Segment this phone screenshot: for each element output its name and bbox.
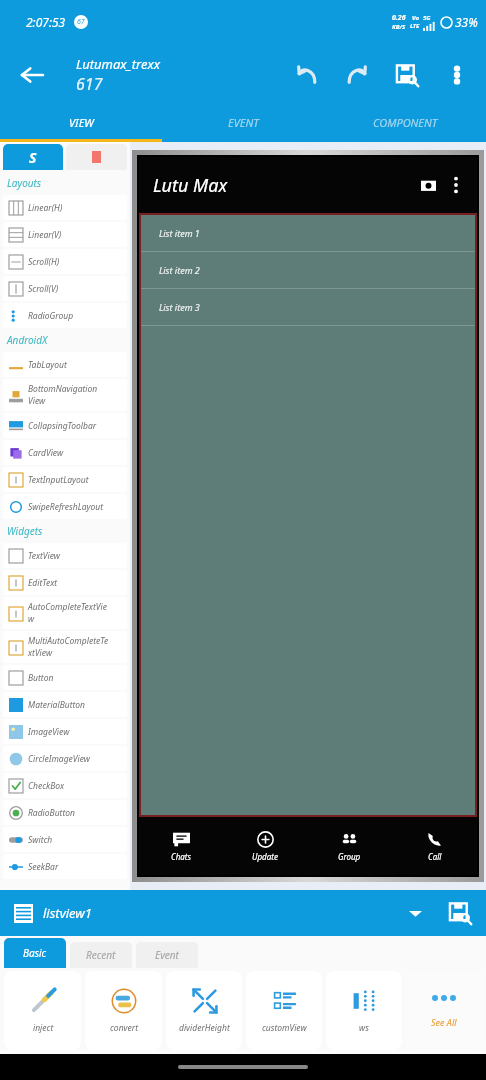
button[interactable]: Save (382, 49, 432, 101)
staticText: CircleImageView (28, 753, 90, 765)
button[interactable]: MultiAutoCompleteTe xtView (3, 631, 127, 663)
button[interactable]: ImageView (3, 719, 127, 744)
button[interactable]: Call (392, 817, 477, 875)
button[interactable]: ws (326, 971, 402, 1050)
button[interactable]: AutoCompleteTextVie w (3, 597, 127, 629)
button[interactable]: Camera (413, 170, 443, 200)
staticText: List item 2 (159, 264, 200, 276)
staticText: CheckBox (28, 780, 65, 792)
button[interactable]: Button (3, 665, 127, 690)
button[interactable]: BottomNavigation View (3, 379, 127, 411)
button[interactable]: COMPONENT (324, 106, 486, 139)
staticText: 67 (77, 17, 85, 27)
staticText: Group (338, 851, 361, 862)
button[interactable]: List item 3 (141, 289, 475, 325)
button[interactable]: Scroll(V) (3, 276, 127, 301)
staticText: Vo (412, 14, 419, 22)
staticText: 2:07:53 (26, 14, 66, 30)
button[interactable]: SwipeRefreshLayout (3, 494, 127, 519)
staticText: TabLayout (28, 359, 67, 371)
button[interactable]: Recent (70, 942, 132, 968)
staticText: Linear(V) (28, 229, 62, 241)
button[interactable]: More options (432, 49, 482, 101)
button[interactable]: List item 1 (141, 215, 475, 251)
staticText: SeekBar (28, 861, 59, 873)
button[interactable]: CircleImageView (3, 746, 127, 771)
staticText: AndroidX (7, 333, 48, 347)
staticText: 5G (423, 14, 431, 22)
staticText: KB/S (392, 23, 406, 31)
button[interactable]: Undo (282, 49, 332, 101)
staticText: LTE (410, 22, 420, 30)
button[interactable]: EVENT (162, 106, 324, 139)
staticText: Widgets (7, 524, 43, 538)
staticText: RadioButton (28, 807, 75, 819)
button[interactable]: Event (136, 942, 198, 968)
staticText: Layouts (7, 176, 42, 190)
button[interactable]: TextInputLayout (3, 467, 127, 492)
staticText: Event (155, 948, 179, 962)
staticText: TextInputLayout (28, 474, 89, 486)
staticText: 617 (76, 73, 103, 95)
staticText: dividerHeight (179, 1022, 230, 1034)
staticText: MaterialButton (28, 699, 86, 711)
staticText: CardView (28, 447, 64, 459)
button[interactable]: Basic (4, 938, 66, 968)
staticText: AutoCompleteTextVie w (28, 601, 107, 625)
button[interactable]: Switch (3, 827, 127, 852)
staticText: RadioGroup (28, 310, 74, 322)
button[interactable]: customView (246, 971, 322, 1050)
button[interactable]: CheckBox (3, 773, 127, 798)
button[interactable]: Chats (139, 817, 223, 875)
button[interactable]: Redo (332, 49, 382, 101)
staticText: VIEW (69, 115, 94, 130)
staticText: Update (252, 851, 278, 862)
staticText: EVENT (228, 115, 259, 130)
staticText: COMPONENT (373, 115, 438, 130)
button[interactable]: EditText (3, 570, 127, 595)
staticText: Scroll(V) (28, 283, 59, 295)
staticText: Linear(H) (28, 202, 63, 214)
button[interactable]: CollapsingToolbar (3, 413, 127, 438)
button[interactable]: MaterialButton (3, 692, 127, 717)
button[interactable]: More (443, 172, 469, 198)
button[interactable]: Scroll(H) (3, 249, 127, 274)
button[interactable]: Back (10, 53, 54, 97)
staticText: 0.26 (392, 13, 406, 23)
button[interactable]: convert (85, 971, 162, 1050)
staticText: Switch (28, 834, 53, 846)
button[interactable]: VIEW (0, 106, 162, 139)
staticText: Lutu Max (153, 173, 228, 198)
button[interactable]: Save (442, 895, 478, 931)
button[interactable]: List item 2 (141, 252, 475, 288)
staticText: See All (431, 1016, 457, 1028)
button[interactable]: Linear(H) (3, 195, 127, 220)
staticText: Recent (86, 948, 116, 962)
staticText: t (443, 1022, 446, 1034)
button[interactable]: t (406, 971, 482, 1050)
button[interactable]: RadioButton (3, 800, 127, 825)
button[interactable]: SeekBar (3, 854, 127, 879)
button[interactable]: Group (307, 817, 392, 875)
button[interactable]: dividerHeight (166, 971, 242, 1050)
staticText: CollapsingToolbar (28, 420, 97, 432)
button[interactable]: TextView (3, 543, 127, 568)
staticText: Scroll(H) (28, 256, 60, 268)
button[interactable]: inject (4, 971, 81, 1050)
button[interactable]: listview1 (0, 890, 486, 936)
button[interactable]: TabLayout (3, 352, 127, 377)
button[interactable]: Linear(V) (3, 222, 127, 247)
button[interactable]: See All (406, 971, 482, 1051)
button[interactable] (66, 144, 127, 170)
staticText: Call (428, 851, 442, 862)
button[interactable]: RadioGroup (3, 303, 127, 328)
staticText: convert (110, 1022, 138, 1034)
button[interactable]: Update (223, 817, 307, 875)
staticText: Chats (171, 851, 191, 862)
staticText: listview1 (43, 904, 92, 922)
staticText: S (29, 148, 37, 167)
staticText: MultiAutoCompleteTe xtView (28, 635, 109, 659)
button[interactable]: S (3, 144, 63, 170)
button[interactable]: CardView (3, 440, 127, 465)
staticText: ImageView (28, 726, 70, 738)
